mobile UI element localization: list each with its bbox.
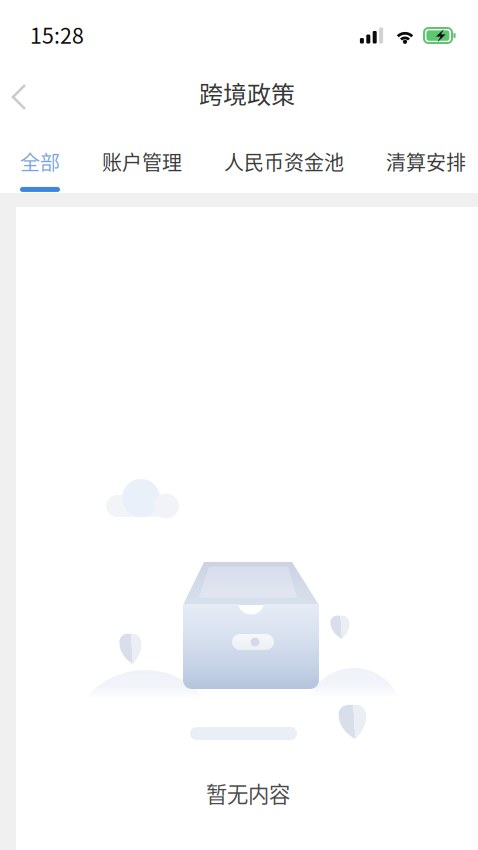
staticText: 15:28 — [30, 19, 84, 50]
staticText: 人民币资金池 — [224, 147, 344, 176]
staticText: 暂无内容 — [206, 778, 290, 808]
staticText: 账户管理 — [102, 147, 182, 176]
staticText: 全部 — [20, 147, 60, 176]
button[interactable]: Back — [0, 73, 44, 121]
button[interactable]: 人民币资金池 — [224, 147, 344, 192]
button[interactable]: 清算安排 — [386, 147, 466, 192]
button[interactable]: 全部 — [20, 147, 60, 192]
staticText: 清算安排 — [386, 147, 466, 176]
staticText: 跨境政策 — [199, 76, 295, 110]
button[interactable]: 账户管理 — [102, 147, 182, 192]
